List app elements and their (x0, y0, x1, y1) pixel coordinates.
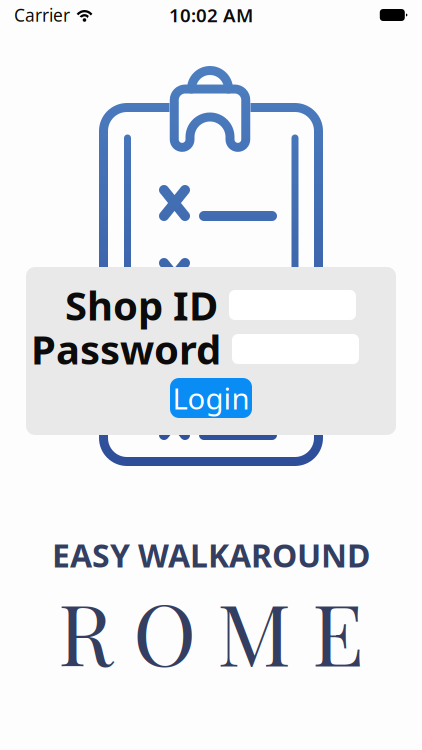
staticText: R O M E (58, 574, 364, 688)
staticText: Carrier (14, 3, 70, 26)
staticText: EASY WALKAROUND (52, 534, 370, 576)
button[interactable]: Login (170, 378, 252, 418)
staticText: Password (31, 322, 221, 375)
staticText: Login (172, 378, 249, 417)
staticText: Shop ID (65, 278, 218, 331)
staticText: 10:02 AM (169, 3, 253, 27)
